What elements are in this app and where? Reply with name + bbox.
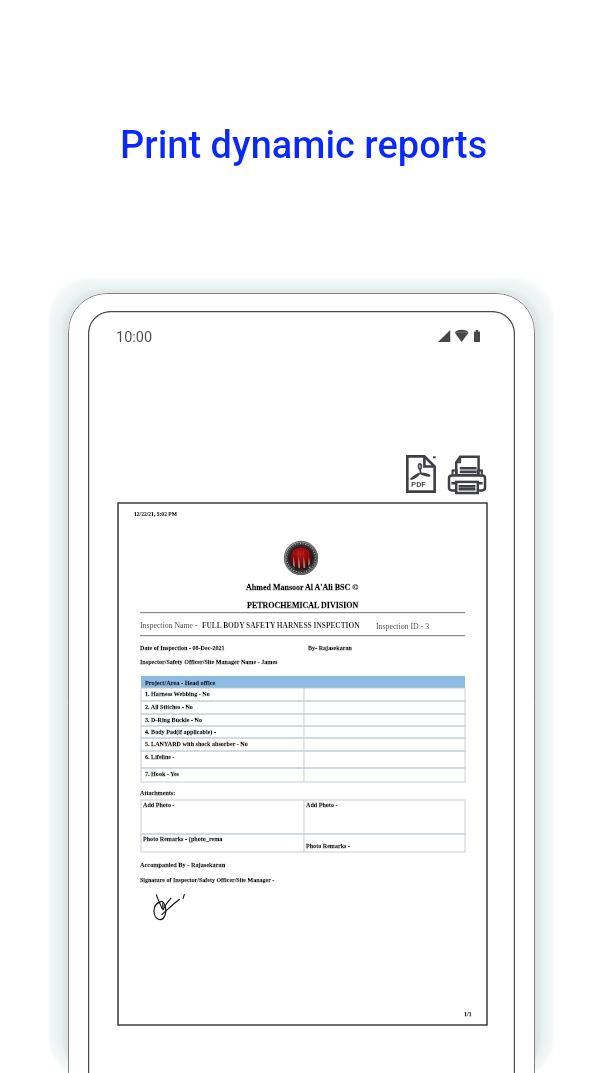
staticText: 2. All Stitches - No — [145, 704, 193, 711]
staticText: 1/1 — [464, 1011, 472, 1018]
staticText: 5. LANYARD with shock absorber - No — [145, 741, 248, 748]
staticText: 12/22/21, 5:02 PM — [134, 511, 178, 517]
staticText: PETROCHEMICAL DIVISION — [247, 601, 359, 610]
button[interactable]: Export PDF — [405, 453, 438, 494]
staticText: 7. Hook - Yes — [145, 771, 179, 778]
staticText: Print dynamic reports — [120, 123, 488, 168]
staticText: 3. D-Ring Buckle - No — [145, 717, 203, 724]
button[interactable]: Print — [446, 453, 488, 494]
staticText: Inspection Name - — [140, 621, 202, 630]
staticText: Ahmed Mansoor Al A'Ali BSC © — [246, 583, 359, 592]
staticText: 6. Lifeline - — [145, 754, 175, 761]
staticText: Photo Remarks - — [306, 843, 351, 850]
staticText: Attachments: — [140, 790, 176, 797]
staticText: 10:00 — [116, 329, 153, 346]
staticText: Accompanied By - Rajasekaran — [140, 861, 226, 868]
staticText: PDF — [411, 480, 426, 489]
staticText: By- Rajasekaran — [308, 645, 352, 652]
staticText: 1. Harness Webbing - No — [145, 691, 210, 698]
staticText: Inspection ID - 3 — [376, 622, 430, 631]
staticText: Add Photo - — [306, 802, 338, 809]
staticText: Photo Remarks - {photo_rema — [143, 836, 223, 843]
staticText: Signature of Inspector/Safety Officer/Si… — [140, 877, 275, 884]
staticText: Project/Area - Head office — [145, 679, 216, 686]
staticText: Add Photo - — [143, 802, 175, 809]
staticText: 4. Body Pad(if applicable) - — [145, 729, 216, 736]
staticText: Inspector/Safety Officer/Site Manager Na… — [140, 659, 278, 666]
staticText: Date of Inspection - 08-Dec-2021 — [140, 645, 225, 652]
staticText: FULL BODY SAFETY HARNESS INSPECTION — [202, 621, 360, 629]
